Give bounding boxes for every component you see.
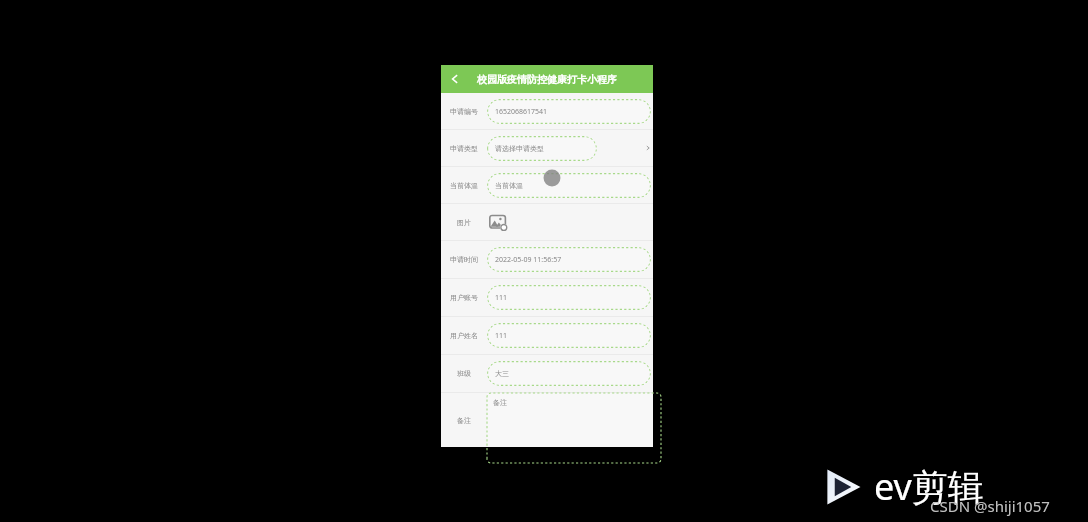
staticText: 申请时间: [450, 255, 478, 264]
staticText: 校园版疫情防控健康打卡小程序: [477, 73, 617, 86]
button[interactable]: 1652068617541: [487, 99, 651, 124]
staticText: 1652068617541: [495, 107, 548, 117]
button[interactable]: 申请类型: [441, 130, 653, 166]
staticText: 请选择申请类型: [495, 144, 544, 153]
button[interactable]: 班级: [441, 355, 653, 392]
button[interactable]: 请选择申请类型: [487, 136, 597, 161]
button[interactable]: 图片: [441, 204, 653, 240]
staticText: 当前体温: [495, 181, 523, 190]
staticText: 图片: [457, 218, 471, 227]
button[interactable]: 当前体温: [441, 167, 653, 203]
staticText: 用户姓名: [450, 331, 478, 340]
button[interactable]: Upload picture: [487, 211, 509, 233]
staticText: 备注: [457, 416, 471, 425]
button[interactable]: 当前体温: [487, 173, 651, 198]
button[interactable]: 111: [487, 323, 651, 348]
staticText: 用户账号: [450, 293, 478, 302]
staticText: 当前体温: [450, 181, 478, 190]
staticText: 班级: [457, 369, 471, 378]
button[interactable]: Back: [445, 69, 465, 89]
button[interactable]: 申请时间: [441, 241, 653, 278]
staticText: 备注: [493, 398, 507, 407]
button[interactable]: 111: [487, 285, 651, 310]
button[interactable]: 申请编号: [441, 93, 653, 129]
staticText: ev剪辑: [874, 462, 984, 511]
staticText: 申请编号: [450, 107, 478, 116]
button[interactable]: 备注: [441, 393, 653, 447]
staticText: 111: [495, 293, 508, 303]
staticText: 111: [495, 331, 508, 341]
button[interactable]: 用户姓名: [441, 317, 653, 354]
staticText: 2022-05-09 11:56:57: [495, 255, 562, 265]
button[interactable]: 大三: [487, 361, 651, 386]
button[interactable]: 2022-05-09 11:56:57: [487, 247, 651, 272]
staticText: 大三: [495, 369, 509, 378]
staticText: CSDN @shiji1057: [930, 496, 1050, 516]
staticText: 申请类型: [450, 144, 478, 153]
button[interactable]: 用户账号: [441, 279, 653, 316]
